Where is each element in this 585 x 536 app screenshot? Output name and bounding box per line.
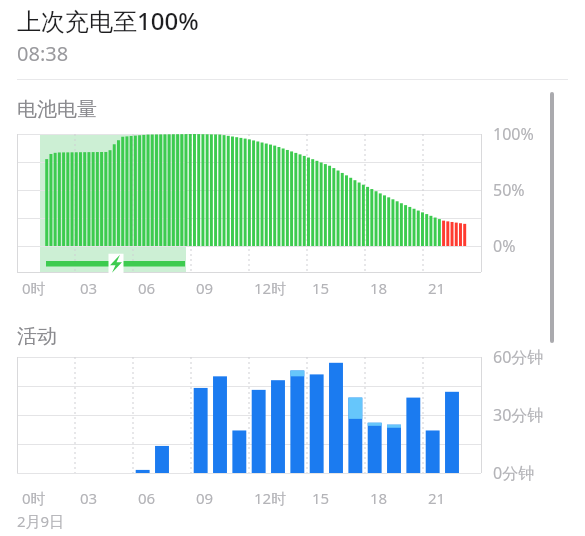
button[interactable]: Battery and activity history [0,0,585,536]
